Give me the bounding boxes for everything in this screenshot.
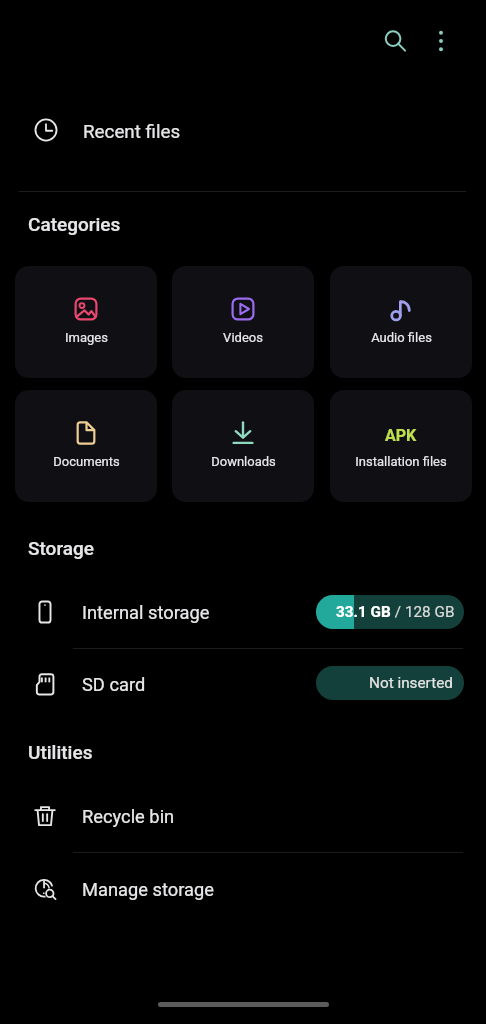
button[interactable]: Recent files [0, 102, 486, 158]
button[interactable]: Internal storage [0, 576, 486, 648]
button[interactable]: Videos [172, 266, 314, 378]
button[interactable]: Documents [15, 390, 157, 502]
staticText: Categories [28, 213, 121, 235]
staticText: Not inserted [369, 674, 453, 692]
button[interactable]: Not inserted [316, 666, 464, 700]
button[interactable]: Images [15, 266, 157, 378]
button[interactable]: SD card [0, 648, 486, 720]
staticText: Utilities [28, 741, 93, 763]
staticText: / 128 GB [391, 603, 455, 621]
button[interactable]: Audio files [330, 266, 472, 378]
staticText: Recycle bin [82, 806, 175, 827]
staticText: Recent files [83, 121, 181, 143]
button[interactable]: Search [371, 17, 419, 65]
button[interactable]: More options [417, 17, 465, 65]
staticText: Storage [28, 537, 94, 559]
staticText: Installation files [355, 454, 447, 469]
staticText: Images [65, 330, 108, 345]
staticText: 33.1 GB [336, 603, 391, 621]
button[interactable]: Downloads [172, 390, 314, 502]
button[interactable]: APK [330, 390, 472, 502]
button[interactable]: Manage storage [0, 853, 486, 925]
staticText: Internal storage [82, 602, 210, 623]
button[interactable]: 33.1 GB [316, 595, 464, 629]
staticText: Documents [53, 454, 120, 469]
button[interactable]: Recycle bin [0, 780, 486, 852]
staticText: Videos [223, 330, 263, 345]
staticText: Audio files [371, 330, 432, 345]
staticText: SD card [82, 674, 146, 695]
staticText: Manage storage [82, 879, 214, 900]
staticText: Downloads [211, 454, 276, 469]
staticText: APK [385, 426, 417, 445]
